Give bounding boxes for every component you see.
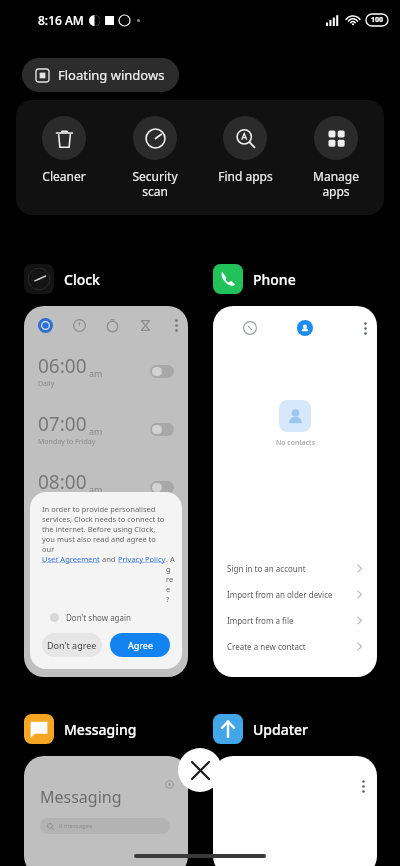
button[interactable]: Floating windows: [22, 58, 179, 92]
staticText: Privacy Policy: [118, 554, 166, 564]
staticText: Import from an older device: [227, 589, 333, 600]
staticText: Daily: [38, 379, 55, 389]
button[interactable]: Messaging: [24, 714, 137, 744]
button[interactable]: Updater: [213, 714, 309, 744]
button[interactable]: [213, 756, 377, 866]
staticText: In order to provide personalised service…: [42, 504, 170, 554]
button[interactable]: Find apps: [203, 116, 287, 184]
button[interactable]: 06:00: [38, 353, 174, 389]
button[interactable]: No contacts: [213, 306, 377, 677]
staticText: Updater: [253, 720, 309, 739]
staticText: 0 messages: [59, 822, 93, 830]
staticText: Don't agree: [47, 639, 97, 651]
staticText: Create a new contact: [227, 641, 306, 652]
staticText: Agree: [128, 639, 153, 651]
staticText: Don't show again: [66, 612, 132, 623]
staticText: am: [89, 425, 103, 437]
staticText: Manage apps: [313, 168, 359, 199]
button[interactable]: Manage apps: [294, 116, 378, 199]
button[interactable]: 0 messages: [47, 818, 170, 834]
staticText: User Agreement: [42, 554, 100, 564]
button[interactable]: [150, 365, 174, 378]
button[interactable]: Clock: [24, 264, 100, 294]
button[interactable]: [150, 481, 174, 494]
staticText: am: [89, 367, 103, 379]
staticText: No contacts: [276, 438, 315, 448]
staticText: 08:00: [38, 469, 87, 495]
button[interactable]: Sign in to an account: [213, 555, 377, 581]
staticText: Floating windows: [58, 66, 165, 84]
button[interactable]: Import from an older device: [213, 581, 377, 607]
staticText: and: [100, 554, 118, 564]
button[interactable]: 08:00: [38, 469, 174, 505]
staticText: Cleaner: [42, 168, 86, 184]
staticText: Sign in to an account: [227, 563, 306, 574]
staticText: 8:16 AM: [38, 12, 84, 28]
staticText: Messaging: [40, 786, 122, 808]
button[interactable]: Don't show again: [42, 612, 132, 623]
staticText: Messaging: [64, 720, 137, 739]
button[interactable]: Messaging: [24, 756, 188, 866]
button[interactable]: Close all: [178, 748, 222, 792]
staticText: Monday to Friday: [38, 437, 96, 447]
button[interactable]: Create a new contact: [213, 633, 377, 659]
button[interactable]: Don't agree: [42, 633, 102, 657]
staticText: 100: [371, 15, 384, 25]
button[interactable]: 07:00: [38, 411, 174, 447]
button[interactable]: Agree: [110, 633, 170, 657]
button[interactable]: Import from a file: [213, 607, 377, 633]
button[interactable]: Cleaner: [22, 116, 106, 184]
staticText: Import from a file: [227, 615, 294, 626]
staticText: . Agree?: [166, 554, 170, 604]
button[interactable]: Phone: [213, 264, 296, 294]
staticText: Clock: [64, 270, 100, 289]
staticText: Security scan: [132, 168, 178, 199]
staticText: am: [89, 483, 103, 495]
button[interactable]: 06:00: [24, 306, 188, 677]
staticText: 06:00: [38, 353, 87, 379]
button[interactable]: [150, 423, 174, 436]
staticText: Phone: [253, 270, 296, 289]
staticText: 07:00: [38, 411, 87, 437]
button[interactable]: Security scan: [113, 116, 197, 199]
staticText: Find apps: [218, 168, 273, 184]
